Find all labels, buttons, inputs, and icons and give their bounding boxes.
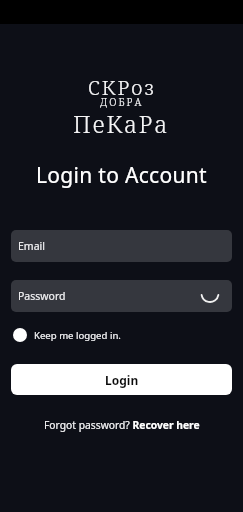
staticText: Login to Account <box>36 161 207 190</box>
button[interactable]: Keep me logged in. <box>13 328 121 342</box>
button[interactable]: Email <box>11 230 232 262</box>
staticText: Password <box>18 289 66 303</box>
staticText: ДОБРА <box>100 95 144 109</box>
button[interactable]: Password <box>11 280 232 312</box>
button[interactable]: Forgot password? Recover here <box>44 418 200 432</box>
staticText: Forgot password? Recover here <box>44 418 200 432</box>
button[interactable]: Login <box>11 364 232 395</box>
staticText: ПеКаРа <box>73 108 170 139</box>
staticText: Login <box>105 372 139 388</box>
staticText: Keep me logged in. <box>34 329 121 342</box>
staticText: Email <box>18 239 45 253</box>
staticText: СКРоз <box>88 74 156 101</box>
